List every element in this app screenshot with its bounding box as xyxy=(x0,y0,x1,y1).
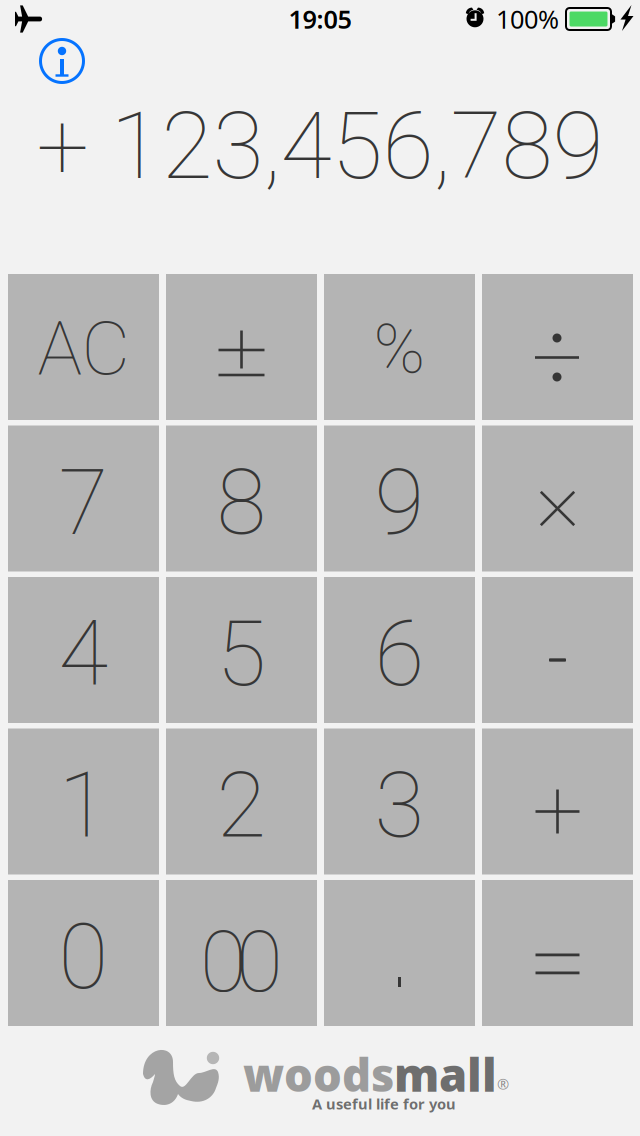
button[interactable]: 5 xyxy=(166,577,317,723)
staticText: 6 xyxy=(374,601,424,707)
staticText: 7 xyxy=(58,449,108,556)
staticText: % xyxy=(373,308,425,390)
button[interactable]: Percent xyxy=(324,274,475,420)
button[interactable]: 7 xyxy=(8,425,159,571)
button[interactable]: 1 xyxy=(8,728,159,874)
button[interactable]: Multiply xyxy=(482,425,633,571)
button[interactable]: 9 xyxy=(324,425,475,571)
staticText: AC xyxy=(37,305,129,393)
staticText: 4 xyxy=(58,601,108,707)
button[interactable]: Double zero xyxy=(166,880,317,1026)
button[interactable]: 6 xyxy=(324,577,475,723)
staticText: 5 xyxy=(216,601,266,707)
staticText: 3 xyxy=(374,752,424,859)
staticText: A useful life for you xyxy=(312,1094,456,1113)
button[interactable]: Decimal point xyxy=(324,880,475,1026)
button[interactable]: 2 xyxy=(166,728,317,874)
staticText: ® xyxy=(497,1074,509,1094)
staticText: 00 xyxy=(200,912,283,1012)
staticText: 0 xyxy=(58,904,108,1010)
staticText: + 123,456,789 xyxy=(36,91,603,201)
button[interactable]: 3 xyxy=(324,728,475,874)
button[interactable]: Minus xyxy=(482,577,633,723)
button[interactable]: Divide xyxy=(482,274,633,420)
button[interactable]: Plus xyxy=(482,728,633,874)
staticText: 19:05 xyxy=(288,2,351,36)
staticText: 8 xyxy=(216,449,266,556)
staticText: woods xyxy=(243,1044,394,1104)
staticText: 100% xyxy=(496,2,559,36)
staticText: 1 xyxy=(58,752,108,859)
staticText: mall xyxy=(394,1044,497,1104)
button[interactable]: Equals xyxy=(482,880,633,1026)
button[interactable]: Info xyxy=(38,37,86,85)
button[interactable]: 0 xyxy=(8,880,159,1026)
button[interactable]: 8 xyxy=(166,425,317,571)
button[interactable]: All clear xyxy=(8,274,159,420)
button[interactable]: 4 xyxy=(8,577,159,723)
staticText: 9 xyxy=(374,449,424,556)
staticText: 2 xyxy=(216,752,266,859)
button[interactable]: Plus minus xyxy=(166,274,317,420)
